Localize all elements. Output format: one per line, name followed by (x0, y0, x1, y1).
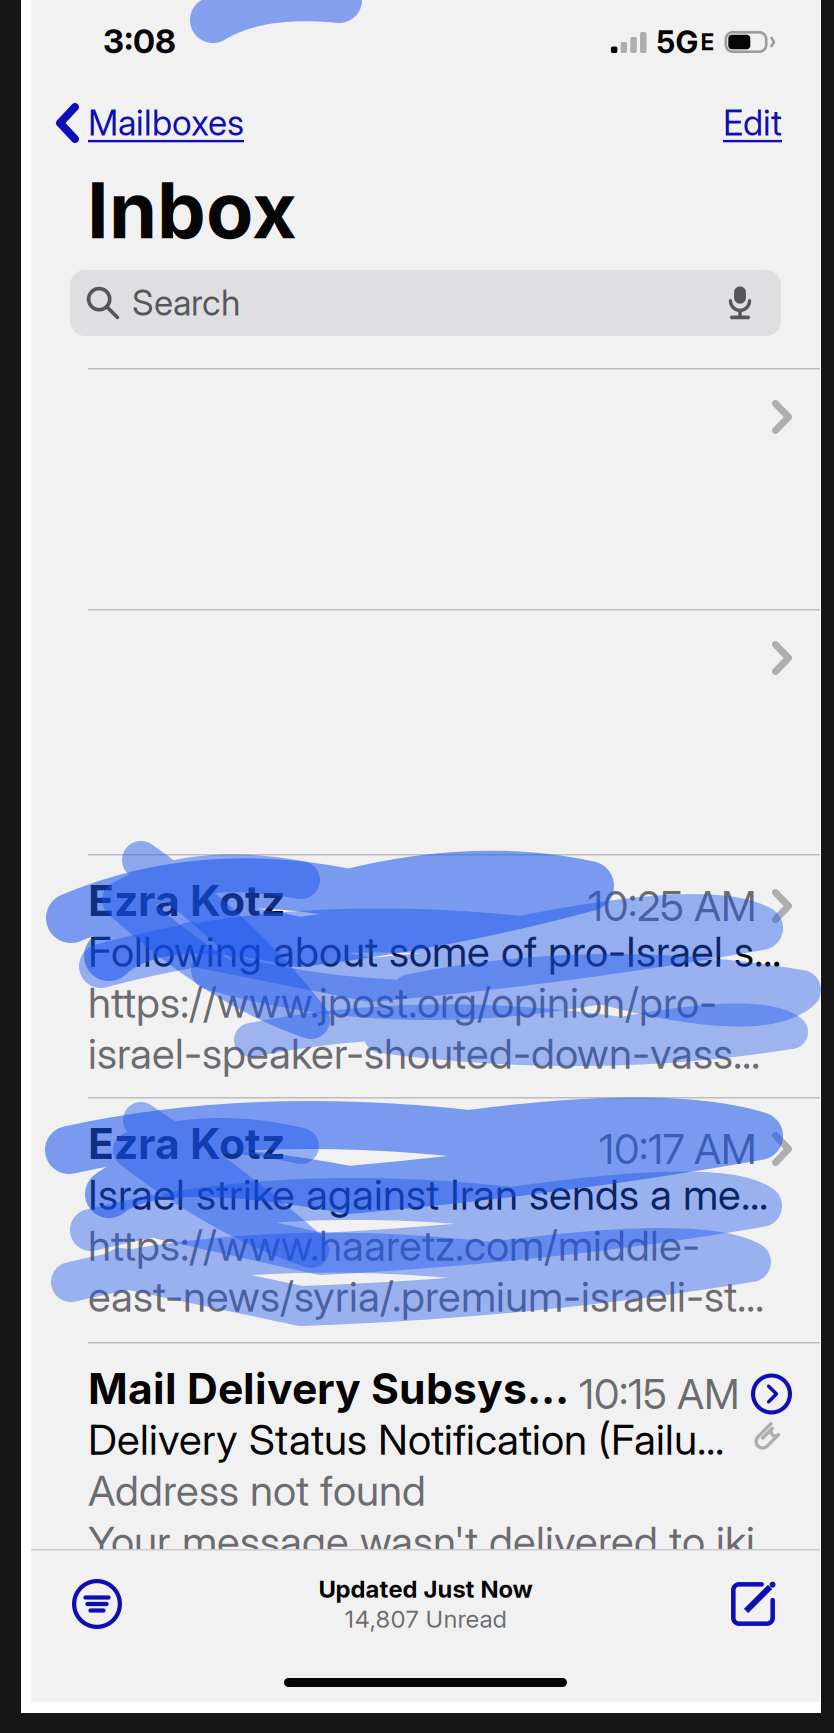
staticText: israel-speaker-shouted-down-vass... (88, 1028, 760, 1079)
staticText: Inbox (87, 163, 297, 257)
staticText: https://www.haaretz.com/middle- (88, 1220, 700, 1271)
button[interactable]: Filter (31, 1565, 146, 1643)
button[interactable]: Message (31, 609, 820, 854)
button[interactable]: Ezra Kotz (31, 1097, 820, 1342)
staticText: Address not found (88, 1465, 426, 1516)
staticText: Delivery Status Notification (Failu... (88, 1414, 724, 1465)
staticText: https://www.jpost.org/opinion/pro- (88, 977, 717, 1028)
staticText: Ezra Kotz (88, 875, 285, 926)
staticText: E (700, 28, 714, 56)
button[interactable]: Ezra Kotz (31, 854, 820, 1097)
staticText: Following about some of pro-Israel s... (88, 926, 781, 977)
staticText: 3:08 (103, 21, 176, 61)
staticText: 14,807 Unread (344, 1604, 506, 1633)
staticText: Your message wasn't delivered to iki (88, 1516, 755, 1567)
button[interactable]: Mailboxes (31, 96, 244, 150)
button[interactable]: Compose (705, 1566, 820, 1642)
staticText: Edit (723, 102, 782, 144)
button[interactable]: Message (31, 368, 820, 609)
button[interactable]: Edit (723, 96, 820, 150)
button[interactable]: Search (70, 270, 781, 336)
staticText: 10:17 AM (599, 1124, 757, 1174)
staticText: 10:25 AM (588, 881, 757, 931)
staticText: Updated Just Now (318, 1574, 532, 1603)
staticText: east-news/syria/.premium-israeli-st... (88, 1271, 764, 1322)
staticText: Ezra Kotz (88, 1118, 285, 1169)
staticText: Search (132, 282, 240, 324)
staticText: Israel strike against Iran sends a me... (88, 1169, 768, 1220)
staticText: 5G (656, 23, 698, 60)
button[interactable]: Mail Delivery Subsys... (31, 1342, 820, 1592)
staticText: Mail Delivery Subsys... (88, 1363, 569, 1414)
staticText: 10:15 AM (579, 1369, 740, 1419)
staticText: Mailboxes (88, 102, 244, 144)
